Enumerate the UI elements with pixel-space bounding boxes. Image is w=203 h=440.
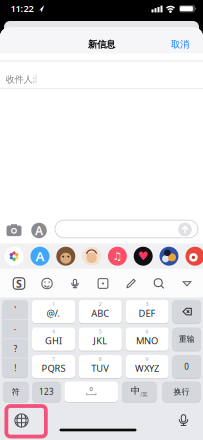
button[interactable]: Hide toolbar xyxy=(180,276,194,290)
button[interactable]: Send xyxy=(178,222,192,236)
button[interactable]: 0 xyxy=(172,355,201,378)
staticText: 新信息 xyxy=(88,39,115,50)
staticText: 符 xyxy=(12,387,20,397)
staticText: 换行 xyxy=(173,387,189,397)
button[interactable]: 7 xyxy=(32,355,75,378)
staticText: ♥ xyxy=(138,249,149,263)
staticText: 3 xyxy=(146,300,149,308)
button[interactable]: Search xyxy=(152,276,166,290)
button[interactable]: Dictation xyxy=(173,410,193,430)
button[interactable]: Punctuation xyxy=(2,300,28,377)
staticText: 8 xyxy=(99,355,102,363)
button[interactable]: 符 xyxy=(3,381,28,402)
staticText: TUV xyxy=(91,362,109,374)
button[interactable]: Space xyxy=(64,381,118,402)
staticText: 2 xyxy=(99,300,102,308)
staticText: DEF xyxy=(139,307,156,319)
staticText: · xyxy=(14,323,17,336)
button[interactable]: 8 xyxy=(79,355,122,378)
button[interactable]: Delete xyxy=(172,300,201,323)
button[interactable]: 9 xyxy=(126,355,169,378)
staticText: 取消 xyxy=(171,39,189,50)
staticText: /英 xyxy=(140,391,147,398)
button[interactable]: App Store apps xyxy=(30,247,49,266)
button[interactable]: Animoji xyxy=(56,247,75,266)
staticText: 收件人: xyxy=(5,73,35,85)
staticText: ? xyxy=(14,343,17,354)
button[interactable]: Digital Touch xyxy=(134,247,153,266)
staticText: @/. xyxy=(46,307,60,319)
staticText: ' xyxy=(14,305,16,315)
button[interactable]: 1 xyxy=(32,300,75,323)
staticText: 123 xyxy=(39,386,54,397)
button[interactable]: 重输 xyxy=(172,327,201,351)
staticText: S xyxy=(16,276,22,291)
staticText: WXYZ xyxy=(135,362,159,374)
staticText: 7 xyxy=(52,355,55,363)
staticText: 11:22 xyxy=(10,2,33,15)
button[interactable]: App Store xyxy=(31,222,47,238)
staticText: 1 xyxy=(52,300,55,308)
button[interactable]: 换行 xyxy=(162,381,200,402)
button[interactable]: 5 xyxy=(79,327,122,351)
staticText: 重输 xyxy=(179,334,195,344)
staticText: 中 xyxy=(131,385,140,396)
staticText: ♫ xyxy=(112,250,122,262)
button[interactable]: Next keyboard xyxy=(11,410,31,430)
button[interactable]: Memoji stickers xyxy=(82,247,101,266)
button[interactable]: Camera xyxy=(5,223,22,237)
button[interactable]: 取消 xyxy=(166,36,194,52)
staticText: 6 xyxy=(146,328,149,335)
button[interactable]: 4 xyxy=(32,327,75,351)
button[interactable]: Handwriting xyxy=(124,276,138,290)
button[interactable]: 2 xyxy=(79,300,122,323)
staticText: MNO xyxy=(136,334,158,347)
button[interactable]: Sogou xyxy=(11,275,27,291)
button[interactable]: Music xyxy=(108,247,127,266)
staticText: ABC xyxy=(91,307,109,319)
button[interactable]: Stickers xyxy=(96,276,110,290)
staticText: 5 xyxy=(99,328,102,335)
button[interactable]: App xyxy=(185,247,203,266)
button[interactable]: 6 xyxy=(126,327,169,351)
staticText: 4 xyxy=(52,328,55,335)
button[interactable]: 123 xyxy=(32,381,60,402)
staticText: GHI xyxy=(45,334,62,347)
staticText: 9 xyxy=(146,355,149,363)
staticText: A xyxy=(35,222,43,238)
button[interactable]: Game xyxy=(159,247,178,266)
button[interactable]: 3 xyxy=(126,300,169,323)
button[interactable]: Chinese/English xyxy=(122,381,156,402)
staticText: 0 xyxy=(184,361,189,372)
button[interactable]: Voice input xyxy=(68,276,82,290)
button[interactable]: Emoji xyxy=(40,276,54,290)
button[interactable]: Photos xyxy=(4,247,23,266)
staticText: JKL xyxy=(93,334,107,347)
staticText: A xyxy=(35,247,44,265)
staticText: ! xyxy=(14,363,16,373)
staticText: PQRS xyxy=(41,362,65,374)
